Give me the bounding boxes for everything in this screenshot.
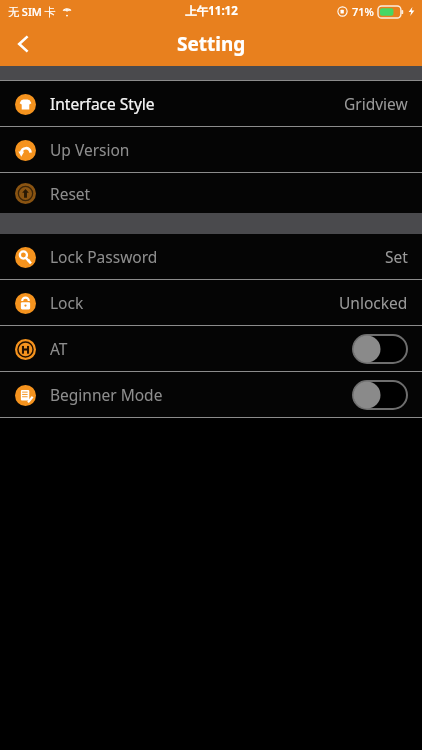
staticText: Lock	[50, 292, 84, 313]
staticText: 71%	[352, 4, 374, 19]
staticText: Reset	[50, 183, 91, 204]
staticText: Set	[385, 246, 408, 267]
button[interactable]: Reset	[0, 173, 422, 213]
button[interactable]: Beginner Mode	[0, 372, 422, 417]
staticText: Lock Password	[50, 246, 158, 267]
button[interactable]: Toggle	[352, 334, 408, 364]
button[interactable]: Lock Password	[0, 234, 422, 279]
button[interactable]: Interface Style	[0, 81, 422, 126]
button[interactable]: AT	[0, 326, 422, 371]
staticText: Setting	[177, 31, 246, 57]
staticText: Gridview	[344, 93, 408, 114]
button[interactable]: Up Version	[0, 127, 422, 172]
button[interactable]: Toggle	[352, 380, 408, 410]
staticText: AT	[50, 338, 68, 359]
button[interactable]: Back	[0, 22, 48, 66]
staticText: Up Version	[50, 139, 130, 160]
staticText: 无 SIM 卡	[8, 4, 56, 19]
staticText: Interface Style	[50, 93, 155, 114]
staticText: Unlocked	[339, 292, 408, 313]
staticText: 上午11:12	[185, 3, 238, 19]
staticText: Beginner Mode	[50, 384, 163, 405]
button[interactable]: Lock	[0, 280, 422, 325]
